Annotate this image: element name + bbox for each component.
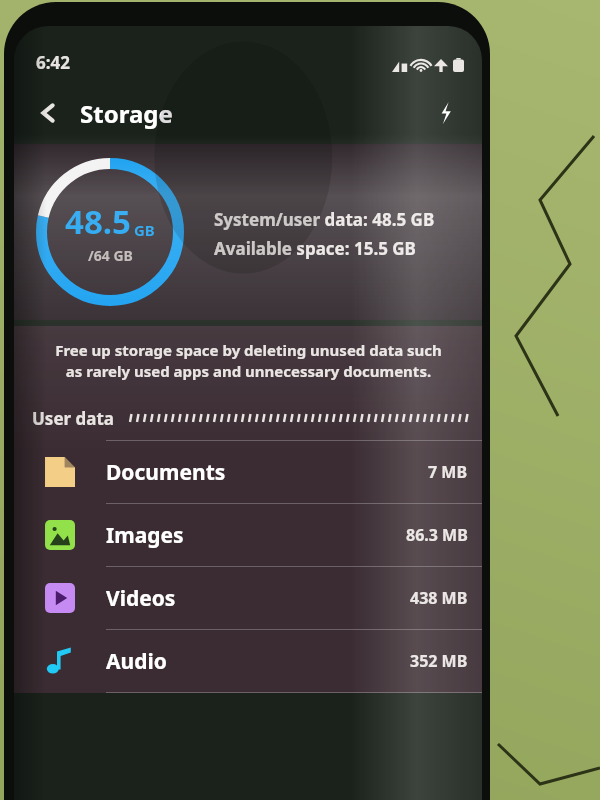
- staticText: GB: [134, 220, 155, 240]
- staticText: Documents: [106, 458, 226, 487]
- button[interactable]: Audio: [14, 630, 482, 692]
- staticText: Videos: [106, 584, 176, 613]
- staticText: 86.3 MB: [406, 524, 468, 546]
- button[interactable]: Optimize storage: [424, 91, 468, 135]
- button[interactable]: Videos: [14, 567, 482, 629]
- staticText: 48.5: [65, 199, 131, 244]
- staticText: User data: [32, 407, 115, 430]
- staticText: 7 MB: [428, 461, 468, 483]
- staticText: /64 GB: [88, 246, 133, 265]
- staticText: Images: [106, 521, 184, 550]
- staticText: Free up storage space by deleting unused…: [55, 340, 442, 382]
- button[interactable]: Documents: [14, 441, 482, 503]
- staticText: Audio: [106, 647, 167, 676]
- staticText: 6:42: [36, 51, 70, 74]
- staticText: System/user data: 48.5 GB: [214, 208, 435, 231]
- staticText: Available space: 15.5 GB: [214, 237, 416, 260]
- staticText: Storage: [80, 97, 173, 130]
- staticText: 438 MB: [410, 587, 468, 609]
- button[interactable]: Back: [26, 90, 72, 136]
- staticText: 352 MB: [410, 650, 468, 672]
- button[interactable]: Images: [14, 504, 482, 566]
